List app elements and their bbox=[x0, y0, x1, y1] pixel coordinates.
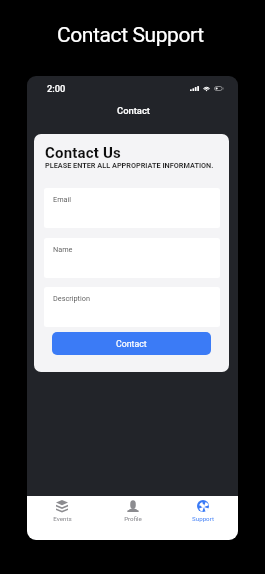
staticText: PLEASE ENTER ALL APPROPRIATE INFORMATION… bbox=[45, 161, 214, 170]
staticText: Contact bbox=[117, 105, 150, 116]
staticText: 2:00 bbox=[47, 83, 66, 94]
staticText: Contact Support bbox=[57, 23, 204, 48]
staticText: Description bbox=[53, 294, 90, 303]
button[interactable]: Email bbox=[44, 188, 220, 228]
button[interactable]: Name bbox=[44, 238, 220, 278]
staticText: Support bbox=[192, 515, 214, 522]
button[interactable]: Support bbox=[179, 496, 227, 526]
staticText: Contact Us bbox=[45, 144, 122, 162]
button[interactable]: Description bbox=[44, 287, 220, 327]
button[interactable]: Profile bbox=[109, 496, 157, 526]
staticText: Email bbox=[53, 195, 72, 204]
staticText: Events bbox=[53, 515, 72, 522]
staticText: Name bbox=[53, 245, 73, 254]
staticText: Profile bbox=[124, 515, 142, 522]
staticText: Contact bbox=[116, 339, 147, 349]
button[interactable]: Events bbox=[38, 496, 86, 526]
button[interactable]: Contact bbox=[52, 332, 211, 355]
